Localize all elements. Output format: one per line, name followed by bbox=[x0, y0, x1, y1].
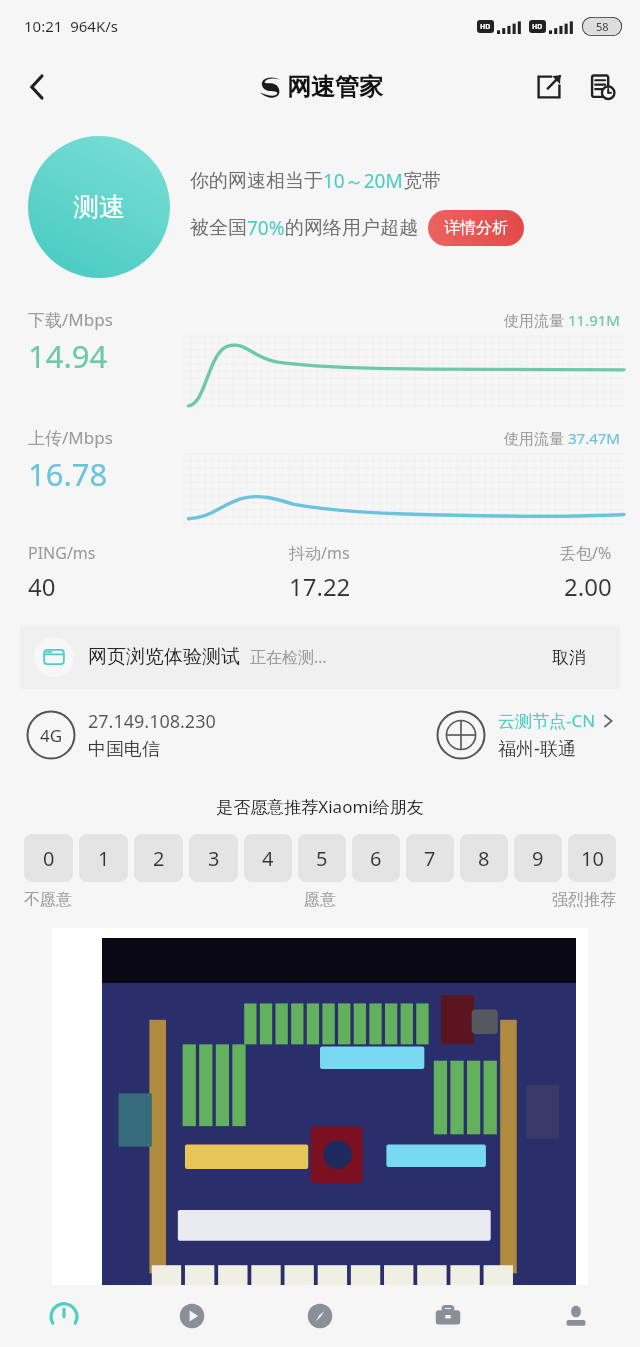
button[interactable]: Tools bbox=[384, 1285, 512, 1347]
staticText: 27.149.108.230 bbox=[88, 709, 216, 734]
button[interactable]: 取消 bbox=[532, 640, 606, 675]
staticText: 是否愿意推荐Xiaomi给朋友 bbox=[0, 795, 640, 818]
staticText: 宽带 bbox=[403, 169, 441, 193]
staticText: 0 bbox=[43, 845, 55, 872]
button[interactable]: History bbox=[580, 64, 626, 110]
staticText: HD bbox=[480, 22, 491, 32]
button[interactable]: 9 bbox=[514, 834, 562, 882]
button[interactable]: Discover bbox=[256, 1285, 384, 1347]
button[interactable]: Profile bbox=[512, 1285, 640, 1347]
staticText: 福州-联通 bbox=[498, 736, 576, 761]
staticText: 云测节点-CN bbox=[498, 709, 596, 732]
staticText: 10:21 964K/s bbox=[24, 16, 118, 36]
staticText: 下载/Mbps bbox=[28, 308, 113, 331]
staticText: 2.00 bbox=[564, 570, 612, 603]
staticText: 网速管家 bbox=[287, 72, 383, 102]
staticText: 8 bbox=[478, 845, 490, 872]
staticText: 4G bbox=[40, 724, 63, 747]
staticText: 强烈推荐 bbox=[552, 890, 616, 910]
button[interactable]: 10 bbox=[568, 834, 616, 882]
staticText: 10 bbox=[581, 845, 604, 872]
button[interactable]: 4G bbox=[26, 709, 436, 761]
staticText: 丢包/% bbox=[560, 542, 612, 564]
staticText: PING/ms bbox=[28, 542, 96, 564]
staticText: 3 bbox=[208, 845, 220, 872]
button[interactable]: 网页浏览体验测试 bbox=[20, 625, 620, 689]
staticText: 测速 bbox=[73, 191, 125, 224]
staticText: 10～20M bbox=[323, 168, 403, 194]
staticText: 你的网速相当于 bbox=[190, 169, 323, 193]
staticText: 使用流量 bbox=[504, 428, 568, 448]
staticText: 愿意 bbox=[304, 890, 336, 910]
staticText: 被全国 bbox=[190, 216, 247, 240]
staticText: 的网络用户超越 bbox=[285, 216, 418, 240]
button[interactable]: 详情分析 bbox=[428, 210, 524, 246]
button[interactable]: 1 bbox=[79, 834, 128, 882]
staticText: 不愿意 bbox=[24, 890, 72, 910]
button[interactable]: 5 bbox=[298, 834, 346, 882]
staticText: 37.47M bbox=[568, 428, 620, 448]
staticText: 正在检测… bbox=[250, 646, 327, 668]
staticText: 16.78 bbox=[28, 453, 108, 495]
button[interactable]: 7 bbox=[406, 834, 454, 882]
staticText: 取消 bbox=[552, 647, 586, 668]
button[interactable] bbox=[52, 928, 588, 1347]
staticText: 1 bbox=[98, 845, 110, 872]
staticText: 9 bbox=[532, 845, 544, 872]
button[interactable]: Video bbox=[128, 1285, 256, 1347]
staticText: 14.94 bbox=[28, 335, 108, 377]
button[interactable]: Share bbox=[526, 64, 572, 110]
button[interactable]: 云测节点-CN bbox=[436, 709, 614, 761]
staticText: 40 bbox=[28, 570, 56, 603]
staticText: 抖动/ms bbox=[289, 542, 350, 564]
button[interactable]: Speed test bbox=[0, 1285, 128, 1347]
staticText: 上传/Mbps bbox=[28, 426, 113, 449]
staticText: 网页浏览体验测试 bbox=[88, 645, 240, 669]
staticText: 2 bbox=[153, 845, 165, 872]
staticText: 11.91M bbox=[568, 310, 620, 330]
button[interactable]: 测速 bbox=[28, 136, 170, 278]
staticText: HD bbox=[532, 22, 543, 32]
button[interactable]: 2 bbox=[134, 834, 183, 882]
button[interactable]: 6 bbox=[352, 834, 400, 882]
staticText: 中国电信 bbox=[88, 738, 160, 761]
staticText: 7 bbox=[424, 845, 436, 872]
staticText: 使用流量 bbox=[504, 310, 568, 330]
staticText: 5 bbox=[316, 845, 328, 872]
staticText: 4 bbox=[262, 845, 274, 872]
staticText: 70% bbox=[247, 215, 285, 241]
button[interactable]: 4 bbox=[244, 834, 292, 882]
button[interactable]: Back bbox=[12, 61, 64, 113]
button[interactable]: 8 bbox=[460, 834, 508, 882]
staticText: 17.22 bbox=[289, 570, 351, 603]
staticText: 详情分析 bbox=[444, 218, 508, 238]
staticText: 6 bbox=[370, 845, 382, 872]
button[interactable]: 3 bbox=[189, 834, 238, 882]
staticText: 58 bbox=[596, 19, 609, 34]
button[interactable]: 0 bbox=[24, 834, 73, 882]
